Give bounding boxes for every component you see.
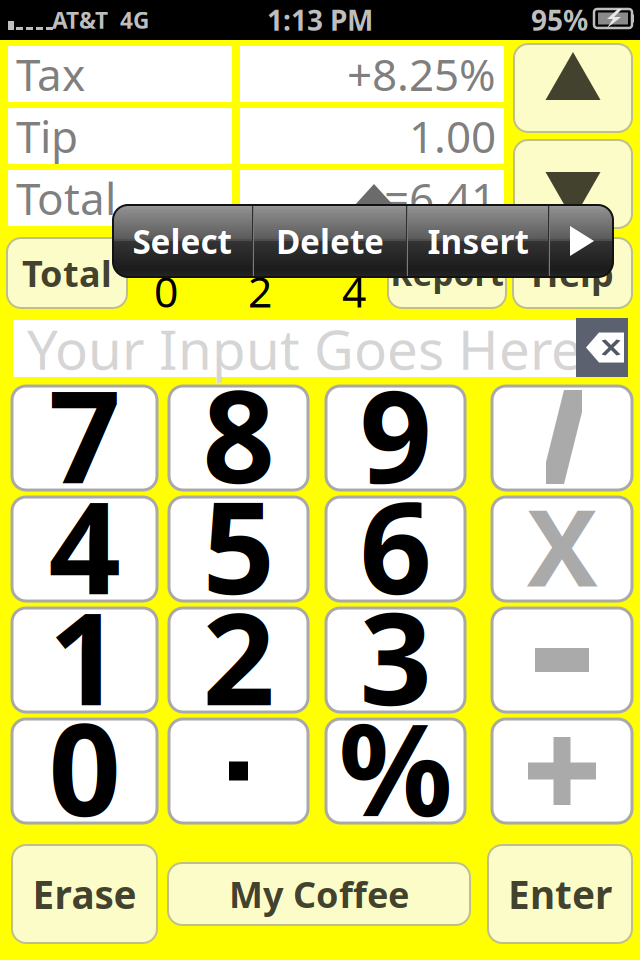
staticText: 0 [154,263,178,319]
button[interactable]: More [550,205,614,277]
staticText: AT&T 4G [52,5,149,35]
staticText: Tax [16,45,85,103]
button[interactable]: 6 [326,465,465,633]
staticText: Your Input Goes Here [27,312,582,385]
button[interactable]: Select [112,205,252,277]
button[interactable]: 2 [169,576,308,744]
staticText: Tip [16,107,78,165]
staticText: 3 [359,572,431,740]
staticText: 0 [48,683,120,851]
staticText: 1 [48,572,120,740]
staticText: 2 [248,263,272,319]
staticText: =6.41 [384,169,496,227]
staticText: 4 [48,461,120,629]
button[interactable]: 8 [169,354,308,522]
button[interactable]: % [326,687,465,855]
staticText: Delete [276,219,384,263]
staticText: Insert [427,219,528,263]
staticText: 1.00 [409,107,496,165]
button[interactable]: Erase [12,845,157,943]
staticText: Help [531,249,614,297]
button[interactable]: Delete [254,205,406,277]
staticText: Report [390,251,503,295]
staticText: 5 [202,461,274,629]
staticText: 9 [359,350,431,518]
button[interactable]: My Coffee [168,863,470,925]
staticText: 8 [202,350,274,518]
button[interactable] [492,608,632,712]
button[interactable]: 3 [326,576,465,744]
button[interactable]: X [492,478,632,620]
staticText: 6 [359,461,431,629]
staticText: Erase [32,868,136,920]
button[interactable]: Insert [408,205,548,277]
button[interactable]: 7 [12,354,157,522]
staticText: 1:13 PM [267,1,373,39]
button[interactable]: 0 [12,687,157,855]
button[interactable]: Help [513,238,632,308]
staticText: Enter [508,868,612,920]
button[interactable] [492,719,632,823]
button[interactable]: Enter [488,845,632,943]
staticText: 2 [202,572,274,740]
button[interactable]: 1 [12,576,157,744]
staticText: +8.25% [347,45,496,103]
button[interactable] [492,386,632,490]
staticText: % [338,683,452,851]
staticText: Select [132,219,231,263]
button[interactable]: Report [388,238,506,308]
button[interactable]: Total [7,238,127,308]
staticText: My Coffee [229,870,409,918]
staticText: 7 [48,350,120,518]
staticText: X [526,474,597,616]
staticText: Total [16,169,116,227]
staticText: 95% [531,1,588,39]
staticText: Total [22,249,112,297]
button[interactable]: 9 [326,354,465,522]
button[interactable]: Backspace [576,318,628,377]
button[interactable]: 5 [169,465,308,633]
button[interactable]: Decrease [514,140,632,228]
button[interactable] [169,719,308,823]
button[interactable]: Increase [514,44,632,132]
button[interactable]: 4 [12,465,157,633]
staticText: 4 [342,263,366,319]
